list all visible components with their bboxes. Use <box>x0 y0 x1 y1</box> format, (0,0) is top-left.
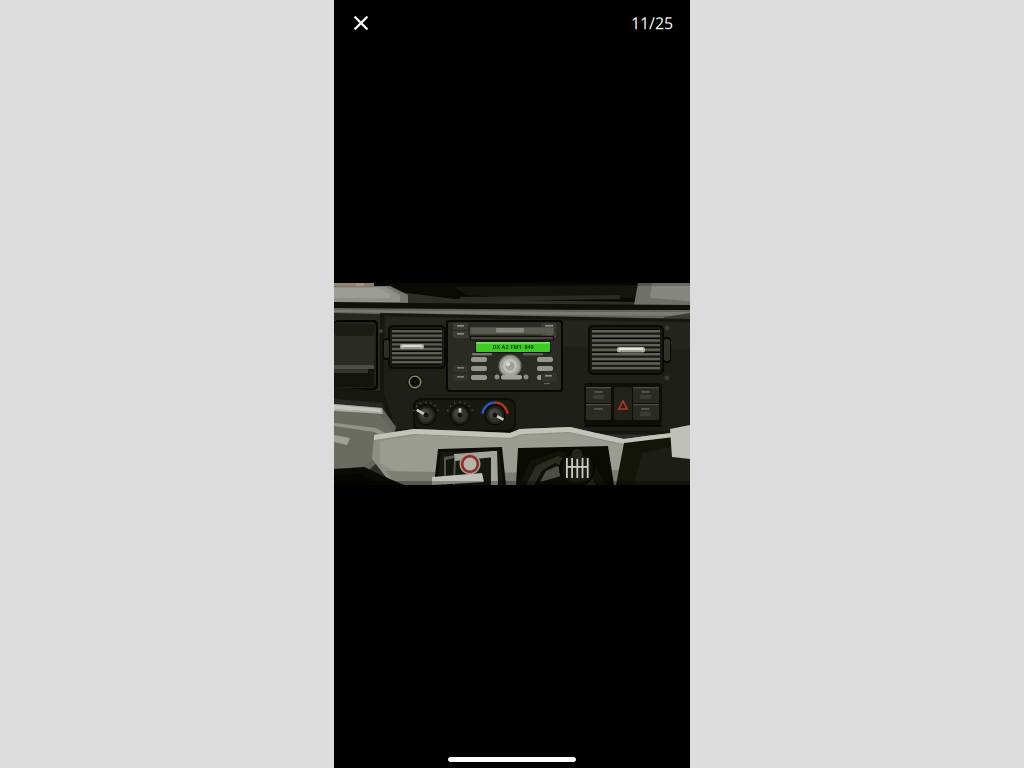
staticText: DX A2 FM1 649 <box>492 343 533 351</box>
staticText: 11/25 <box>631 12 673 34</box>
button[interactable]: 11/25 <box>621 0 683 46</box>
button[interactable]: Close <box>338 0 384 46</box>
